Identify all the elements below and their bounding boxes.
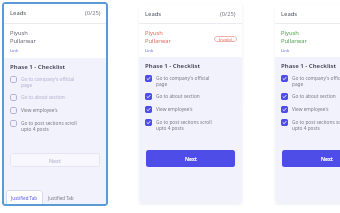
button[interactable]: Checkbox <box>281 93 288 100</box>
staticText: View employee's <box>21 107 81 113</box>
staticText: Phase 1 - Checklist <box>145 62 201 70</box>
button[interactable]: Justified Tab <box>43 190 79 205</box>
staticText: Link <box>10 47 19 53</box>
staticText: Leads <box>10 9 27 17</box>
staticText: Go to about section <box>292 93 340 99</box>
staticText: Piyush Pullarwar <box>10 29 36 45</box>
button[interactable]: Checkbox <box>145 106 152 113</box>
button[interactable]: Checkbox <box>10 76 17 83</box>
button[interactable]: Invalid <box>214 36 237 42</box>
staticText: Phase 1 - Checklist <box>10 63 66 71</box>
staticText: (0/25) <box>220 10 236 18</box>
button[interactable]: Checkbox <box>145 119 152 126</box>
staticText: Go to post sections scroll upto 4 posts <box>21 120 81 132</box>
button[interactable]: Checkbox <box>3 104 107 117</box>
staticText: Go to post sections scroll upto 4 posts <box>292 119 340 131</box>
button[interactable]: Leads <box>275 4 340 23</box>
button[interactable]: Checkbox <box>281 119 288 126</box>
staticText: Go to about section <box>156 93 216 99</box>
button[interactable]: Checkbox <box>281 75 288 82</box>
staticText: Link <box>145 47 154 53</box>
button[interactable]: Checkbox <box>139 103 242 116</box>
button[interactable]: Checkbox <box>10 120 17 127</box>
button[interactable]: Checkbox <box>139 116 242 134</box>
button[interactable]: Checkbox <box>281 106 288 113</box>
staticText: Next <box>49 157 61 164</box>
button[interactable]: Leads <box>3 3 107 23</box>
button[interactable]: Checkbox <box>145 93 152 100</box>
button[interactable]: Checkbox <box>145 75 152 82</box>
staticText: Justified Tab <box>48 195 74 201</box>
button[interactable]: Checkbox <box>139 90 242 103</box>
button[interactable]: Checkbox <box>275 90 340 103</box>
button[interactable]: Next <box>10 153 100 167</box>
staticText: Go to company's official page <box>292 75 340 87</box>
button[interactable]: Leads <box>139 4 242 23</box>
button[interactable]: Next <box>146 150 235 167</box>
button[interactable]: Checkbox <box>139 72 242 90</box>
staticText: View employee's <box>156 106 216 112</box>
staticText: Go to post sections scroll upto 4 posts <box>156 119 216 131</box>
button[interactable]: Checkbox <box>10 107 17 114</box>
staticText: Phase 1 - Checklist <box>281 62 337 70</box>
staticText: View employee's <box>292 106 340 112</box>
staticText: Leads <box>281 10 298 18</box>
staticText: Next <box>321 155 333 162</box>
staticText: Next <box>185 155 197 162</box>
button[interactable]: Checkbox <box>3 73 107 91</box>
staticText: Go to about section <box>21 94 81 100</box>
button[interactable]: Checkbox <box>275 72 340 90</box>
button[interactable]: Checkbox <box>275 116 340 134</box>
staticText: Link <box>281 47 290 53</box>
staticText: Justified Tab <box>11 195 38 201</box>
staticText: Go to company's official page <box>156 75 216 87</box>
button[interactable]: Next <box>282 150 340 167</box>
button[interactable]: Checkbox <box>275 103 340 116</box>
staticText: Invalid <box>219 37 232 42</box>
button[interactable]: Justified Tab <box>6 190 43 205</box>
button[interactable]: Checkbox <box>3 117 107 135</box>
staticText: Piyush Pullarwar <box>281 29 307 45</box>
button[interactable]: Checkbox <box>10 94 17 101</box>
staticText: Leads <box>145 10 162 18</box>
staticText: Go to company's official page <box>21 76 81 88</box>
staticText: Piyush Pullarwar <box>145 29 171 45</box>
staticText: (0/25) <box>85 9 101 17</box>
button[interactable]: Checkbox <box>3 91 107 104</box>
